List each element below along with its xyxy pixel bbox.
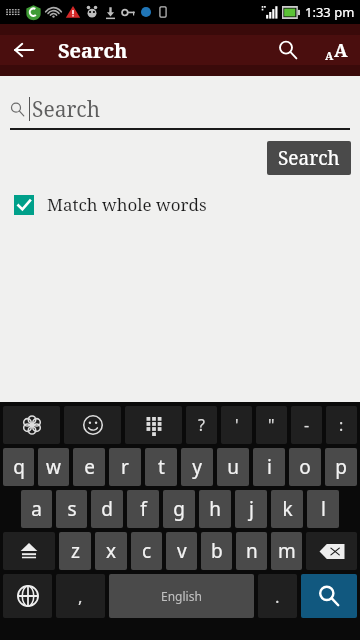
button[interactable]: h (199, 490, 231, 528)
staticText: r (121, 454, 129, 480)
staticText: Search (58, 37, 128, 64)
staticText: A (325, 48, 334, 63)
button[interactable]: Search (264, 26, 312, 74)
button[interactable]: English (109, 574, 254, 618)
staticText: o (299, 454, 311, 480)
button[interactable]: Search (10, 90, 350, 128)
staticText: m (278, 538, 296, 564)
staticText: ? (198, 414, 205, 436)
staticText: u (227, 454, 239, 480)
button[interactable]: n (236, 532, 267, 570)
staticText: t (158, 454, 165, 480)
staticText: Search (278, 145, 340, 171)
staticText: k (282, 496, 293, 522)
button[interactable]: p (325, 448, 357, 486)
button[interactable]: e (73, 448, 105, 486)
staticText: c (142, 538, 152, 564)
button[interactable]: Numbers (125, 406, 182, 444)
staticText: Search (32, 95, 101, 124)
staticText: q (13, 454, 25, 480)
staticText: A (334, 38, 348, 63)
button[interactable]: Search (301, 574, 357, 618)
button[interactable]: i (253, 448, 285, 486)
button[interactable]: : (326, 406, 357, 444)
staticText: w (46, 454, 61, 480)
staticText: b (211, 538, 223, 564)
button[interactable]: Search (267, 141, 351, 175)
button[interactable]: c (131, 532, 162, 570)
button[interactable]: Emoji (64, 406, 121, 444)
staticText: , (78, 585, 83, 608)
other: Emoji (82, 414, 104, 436)
button[interactable]: u (217, 448, 249, 486)
staticText: d (101, 496, 113, 522)
button[interactable]: d (91, 490, 123, 528)
button[interactable]: o (289, 448, 321, 486)
button[interactable]: q (3, 448, 34, 486)
button[interactable]: t (145, 448, 177, 486)
button[interactable]: , (56, 574, 105, 618)
button[interactable]: k (271, 490, 303, 528)
button[interactable]: y (181, 448, 213, 486)
staticText: v (177, 538, 187, 564)
button[interactable]: s (56, 490, 87, 528)
staticText: y (192, 454, 202, 480)
button[interactable]: ' (221, 406, 252, 444)
button[interactable]: Shift (3, 532, 55, 570)
button[interactable]: w (38, 448, 69, 486)
button[interactable]: Text size (312, 26, 360, 74)
button[interactable]: m (271, 532, 302, 570)
other: Symbols (21, 414, 43, 436)
staticText: e (84, 454, 95, 480)
button[interactable]: b (201, 532, 232, 570)
button[interactable]: Match whole words (14, 193, 360, 216)
button[interactable]: . (258, 574, 297, 618)
button[interactable]: - (291, 406, 322, 444)
button[interactable]: l (307, 490, 339, 528)
staticText: i (267, 454, 272, 480)
button[interactable]: Back (0, 26, 48, 74)
staticText: f (140, 496, 147, 522)
button[interactable]: " (256, 406, 287, 444)
staticText: Match whole words (47, 193, 207, 216)
button[interactable]: Symbols (3, 406, 60, 444)
staticText: a (31, 496, 42, 522)
staticText: x (106, 538, 117, 564)
button[interactable]: Backspace (306, 532, 357, 570)
staticText: l (321, 496, 326, 522)
staticText: ' (235, 414, 239, 436)
button[interactable]: Change language (3, 574, 52, 618)
staticText: z (71, 538, 80, 564)
button[interactable]: j (235, 490, 267, 528)
staticText: " (268, 414, 275, 436)
staticText: : (339, 414, 344, 436)
staticText: n (246, 538, 258, 564)
staticText: English (161, 588, 202, 604)
staticText: 1:33 pm (305, 3, 355, 21)
button[interactable]: f (127, 490, 159, 528)
button[interactable]: g (163, 490, 195, 528)
staticText: g (173, 496, 185, 522)
staticText: h (209, 496, 221, 522)
button[interactable]: v (166, 532, 197, 570)
button[interactable]: a (21, 490, 52, 528)
staticText: . (275, 585, 280, 608)
staticText: j (249, 496, 254, 522)
other: Numbers (144, 415, 164, 435)
button[interactable]: z (59, 532, 91, 570)
button[interactable]: r (109, 448, 141, 486)
staticText: s (67, 496, 77, 522)
staticText: p (335, 454, 347, 480)
button[interactable]: x (95, 532, 127, 570)
staticText: - (304, 414, 310, 436)
button[interactable]: ? (186, 406, 217, 444)
